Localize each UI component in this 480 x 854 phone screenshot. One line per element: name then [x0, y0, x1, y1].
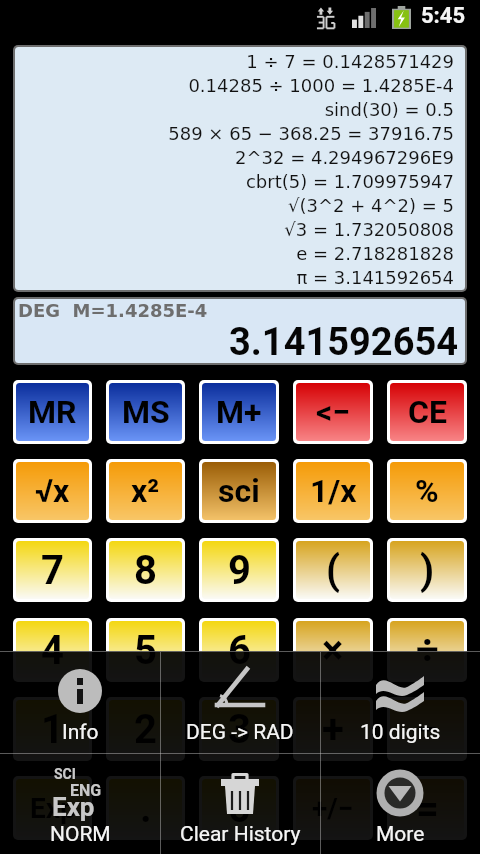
button[interactable]: 4 — [16, 621, 89, 679]
staticText: × — [322, 627, 344, 674]
button[interactable]: Clear History — [160, 754, 320, 854]
staticText: sci — [218, 472, 260, 510]
button[interactable]: 2 — [109, 700, 182, 758]
staticText: 10 digits — [360, 720, 441, 745]
button[interactable]: 9 — [202, 541, 276, 599]
button[interactable]: Exp — [16, 779, 89, 837]
staticText: √(3^2 + 4^2) = 5 — [23, 195, 454, 216]
staticText: 3 — [228, 706, 251, 753]
staticText: ( — [326, 547, 341, 594]
staticText: More — [376, 822, 425, 847]
staticText: 2 — [134, 706, 157, 753]
staticText: +/− — [312, 792, 354, 825]
staticText: − — [416, 706, 439, 753]
button[interactable]: MR — [16, 383, 89, 441]
staticText: 1 ÷ 7 = 0.1428571429 — [23, 51, 454, 72]
staticText: 5:45 — [421, 3, 466, 29]
button[interactable]: − — [390, 700, 464, 758]
button[interactable]: 1/x — [296, 462, 370, 520]
button[interactable]: 8 — [109, 541, 182, 599]
staticText: e = 2.718281828 — [23, 243, 454, 264]
button[interactable]: NORM — [0, 754, 160, 854]
staticText: ) — [420, 547, 435, 594]
staticText: % — [415, 472, 439, 510]
staticText: ENG — [70, 781, 102, 800]
staticText: MR — [28, 393, 77, 431]
staticText: DEG -> RAD — [186, 720, 294, 745]
staticText: CE — [408, 393, 447, 431]
staticText: √3 = 1.732050808 — [23, 219, 454, 240]
button[interactable]: M+ — [202, 383, 276, 441]
staticText: π = 3.141592654 — [23, 267, 454, 288]
staticText: 7 — [41, 547, 64, 594]
staticText: NORM — [50, 822, 111, 847]
staticText: sind(30) = 0.5 — [23, 99, 454, 120]
staticText: 8 — [134, 547, 157, 594]
staticText: Info — [62, 720, 99, 745]
button[interactable]: 3 — [202, 700, 276, 758]
button[interactable]: ÷ — [390, 621, 464, 679]
staticText: 1/x — [310, 472, 357, 510]
button[interactable]: ) — [390, 541, 464, 599]
button[interactable]: 1 — [16, 700, 89, 758]
staticText: = — [416, 785, 439, 832]
staticText: Exp — [52, 792, 95, 822]
button[interactable]: = — [390, 779, 464, 837]
button[interactable]: DEG M=1.4285E-4 — [15, 299, 465, 363]
staticText: Clear History — [180, 822, 301, 847]
button[interactable]: x² — [109, 462, 182, 520]
staticText: Exp — [30, 792, 76, 825]
staticText: 1 — [41, 706, 64, 753]
button[interactable]: sci — [202, 462, 276, 520]
button[interactable]: √x — [16, 462, 89, 520]
button[interactable]: CE — [390, 383, 464, 441]
staticText: 2^32 = 4.294967296E9 — [23, 147, 454, 168]
button[interactable]: × — [296, 621, 370, 679]
staticText: x² — [131, 472, 160, 510]
staticText: cbrt(5) = 1.709975947 — [23, 171, 454, 192]
staticText: 0 — [228, 785, 251, 832]
staticText: √x — [35, 472, 70, 510]
button[interactable]: 0 — [202, 779, 276, 837]
button[interactable]: 6 — [202, 621, 276, 679]
button[interactable]: MS — [109, 383, 182, 441]
staticText: SCI — [54, 766, 76, 782]
staticText: + — [322, 706, 344, 753]
button[interactable]: 1 ÷ 7 = 0.1428571429 — [15, 47, 465, 290]
staticText: <− — [316, 393, 351, 431]
button[interactable]: +/− — [296, 779, 370, 837]
staticText: 4 — [41, 627, 64, 674]
staticText: 5 — [134, 627, 157, 674]
staticText: 3.141592654 — [229, 320, 459, 363]
staticText: 0.14285 ÷ 1000 = 1.4285E-4 — [23, 75, 454, 96]
button[interactable]: DEG -> RAD — [160, 652, 320, 752]
staticText: 589 × 65 − 368.25 = 37916.75 — [23, 123, 454, 144]
button[interactable]: . — [109, 779, 182, 837]
staticText: MS — [122, 393, 170, 431]
button[interactable]: + — [296, 700, 370, 758]
button[interactable]: <− — [296, 383, 370, 441]
button[interactable]: 10 digits — [320, 652, 480, 752]
staticText: DEG M=1.4285E-4 — [18, 300, 208, 321]
staticText: . — [140, 785, 152, 832]
button[interactable]: 5 — [109, 621, 182, 679]
button[interactable]: More — [320, 754, 480, 854]
button[interactable]: ( — [296, 541, 370, 599]
staticText: 9 — [228, 547, 251, 594]
button[interactable]: Info — [0, 652, 160, 752]
staticText: M+ — [216, 393, 262, 431]
button[interactable]: % — [390, 462, 464, 520]
staticText: ÷ — [416, 627, 439, 674]
button[interactable]: 7 — [16, 541, 89, 599]
staticText: 6 — [228, 627, 251, 674]
